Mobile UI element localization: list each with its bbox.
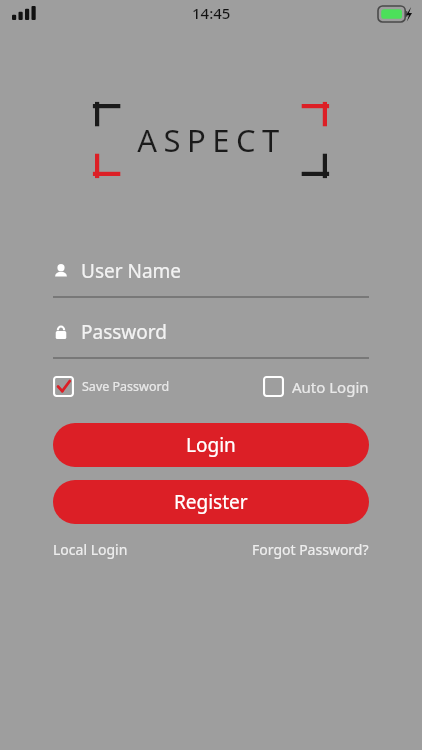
staticText: Password	[81, 319, 167, 345]
staticText: User Name	[81, 258, 182, 284]
button[interactable]: Register	[53, 480, 369, 524]
staticText: ASPECT	[137, 119, 286, 161]
staticText: Local Login	[53, 540, 128, 559]
button[interactable]: User Name	[53, 258, 369, 298]
button[interactable]: Unchecked	[263, 376, 369, 397]
staticText: Auto Login	[292, 377, 369, 397]
button[interactable]: Login	[53, 423, 369, 467]
button[interactable]: Password	[53, 319, 369, 359]
button[interactable]: Checked	[53, 376, 170, 397]
button[interactable]: Local Login	[53, 540, 128, 559]
staticText: Forgot Password?	[252, 540, 369, 559]
other: Unchecked	[263, 376, 284, 397]
staticText: Register	[174, 489, 248, 515]
other: Checked	[53, 376, 74, 397]
staticText: 14:45	[192, 3, 231, 23]
staticText: Save Password	[82, 378, 170, 395]
button[interactable]: Forgot Password?	[252, 540, 369, 559]
staticText: Login	[186, 432, 236, 458]
